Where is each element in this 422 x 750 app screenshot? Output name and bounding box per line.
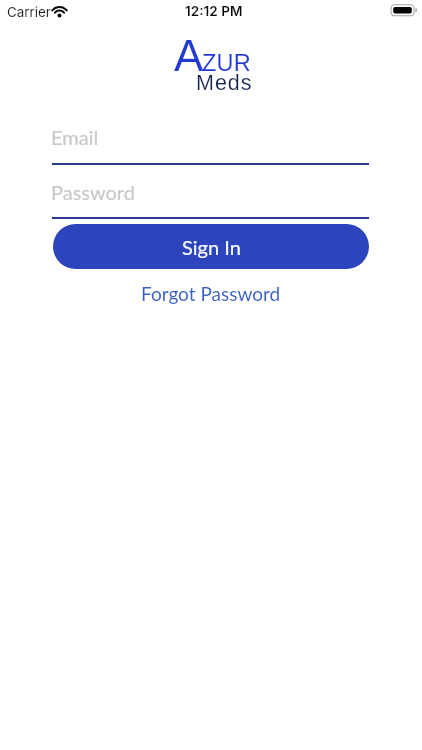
staticText: A	[174, 31, 204, 80]
staticText: 12:12 PM	[185, 3, 243, 19]
staticText: Password	[51, 180, 135, 204]
staticText: Forgot Password	[141, 282, 281, 305]
button[interactable]: Sign In	[53, 224, 369, 269]
staticText: ZUR	[202, 50, 251, 76]
staticText: Meds	[196, 71, 253, 95]
button[interactable]	[52, 118, 369, 166]
button[interactable]: Forgot Password	[140, 279, 282, 307]
staticText: Carrier	[7, 4, 51, 20]
button[interactable]	[52, 172, 369, 220]
staticText: Email	[51, 125, 99, 149]
staticText: Sign In	[182, 235, 241, 259]
